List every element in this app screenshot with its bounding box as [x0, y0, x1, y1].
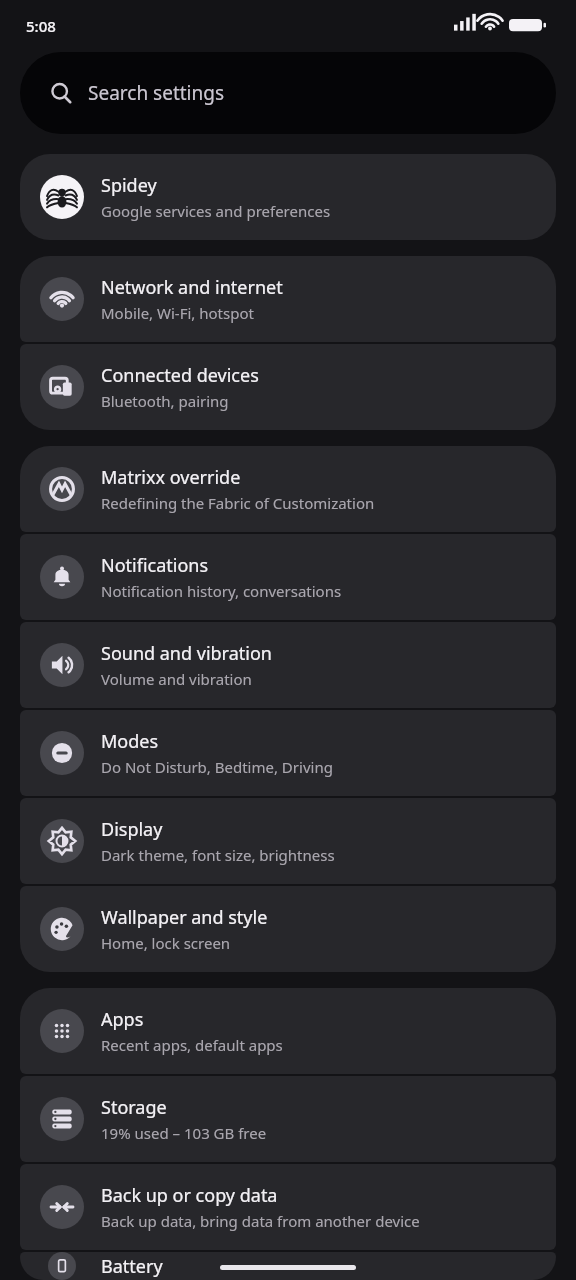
button[interactable]: Sound and vibration	[20, 622, 556, 708]
button[interactable]: Matrixx override	[20, 446, 556, 532]
button[interactable]: Spidey	[20, 154, 556, 240]
button[interactable]: Battery	[20, 1252, 556, 1280]
button[interactable]: Back up or copy data	[20, 1164, 556, 1250]
button[interactable]: Wallpaper and style	[20, 886, 556, 972]
button[interactable]: Connected devices	[20, 344, 556, 430]
staticText: Dark theme, font size, brightness	[101, 845, 335, 865]
staticText: Redefining the Fabric of Customization	[101, 493, 375, 513]
staticText: Modes	[101, 729, 159, 754]
staticText: Storage	[101, 1095, 167, 1120]
staticText: 19% used – 103 GB free	[101, 1123, 267, 1143]
staticText: Spidey	[101, 173, 157, 198]
staticText: Apps	[101, 1007, 144, 1032]
staticText: Notification history, conversations	[101, 581, 342, 601]
staticText: Battery	[101, 1254, 163, 1279]
button[interactable]: Network and internet	[20, 256, 556, 342]
staticText: Notifications	[101, 553, 209, 578]
staticText: Back up data, bring data from another de…	[101, 1211, 420, 1231]
button[interactable]: Notifications	[20, 534, 556, 620]
staticText: Connected devices	[101, 363, 259, 388]
button[interactable]: Modes	[20, 710, 556, 796]
staticText: Google services and preferences	[101, 201, 331, 221]
staticText: Search settings	[88, 80, 225, 106]
staticText: Wallpaper and style	[101, 905, 268, 930]
staticText: Sound and vibration	[101, 641, 272, 666]
staticText: Network and internet	[101, 275, 283, 300]
staticText: Recent apps, default apps	[101, 1035, 283, 1055]
staticText: Do Not Disturb, Bedtime, Driving	[101, 757, 333, 777]
button[interactable]: Search settings	[20, 52, 556, 134]
button[interactable]: Storage	[20, 1076, 556, 1162]
button[interactable]: Display	[20, 798, 556, 884]
staticText: Display	[101, 817, 163, 842]
staticText: Home, lock screen	[101, 933, 231, 953]
staticText: 5:08	[26, 16, 56, 36]
button[interactable]: Apps	[20, 988, 556, 1074]
staticText: Back up or copy data	[101, 1183, 278, 1208]
staticText: Volume and vibration	[101, 669, 252, 689]
staticText: Bluetooth, pairing	[101, 391, 229, 411]
staticText: Matrixx override	[101, 465, 241, 490]
staticText: Mobile, Wi-Fi, hotspot	[101, 303, 254, 323]
